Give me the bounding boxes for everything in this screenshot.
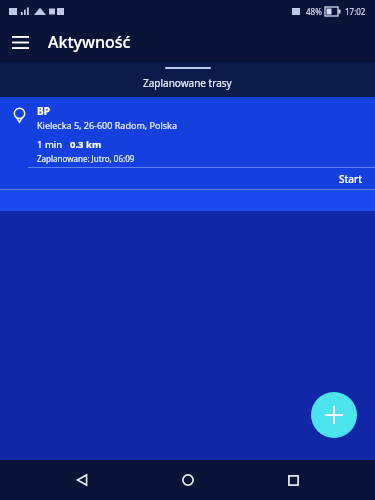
staticText: 1 min xyxy=(37,138,63,151)
button[interactable]: Home xyxy=(165,460,211,500)
button[interactable]: Add route xyxy=(311,392,357,438)
staticText: BP xyxy=(37,104,50,118)
staticText: 48% xyxy=(306,6,322,17)
button[interactable]: Open navigation menu xyxy=(0,22,40,62)
staticText: Start xyxy=(339,172,363,186)
staticText: Aktywność xyxy=(48,31,131,53)
staticText: Kielecka 5, 26-600 Radom, Polska xyxy=(37,119,177,131)
button[interactable]: BP xyxy=(0,97,375,211)
staticText: Zaplanowane: Jutro, 06:09 xyxy=(37,153,135,164)
button[interactable]: Back xyxy=(59,460,105,500)
staticText: 0.3 km xyxy=(70,138,102,151)
staticText: Zaplanowane trasy xyxy=(143,76,232,90)
button[interactable]: Recent apps xyxy=(270,460,316,500)
staticText: 17:02 xyxy=(345,6,366,17)
button[interactable]: Start xyxy=(327,168,375,189)
